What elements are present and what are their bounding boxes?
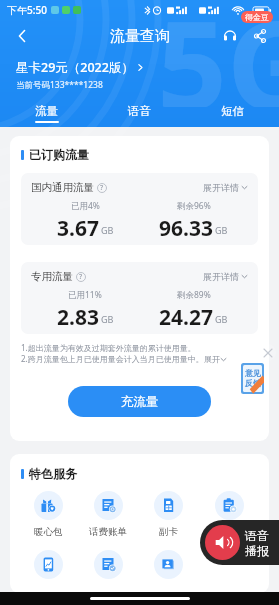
button[interactable]: Feedback [241, 363, 264, 394]
button[interactable]: Close feedback [259, 344, 276, 361]
button[interactable]: 话费账单 [78, 491, 138, 538]
button[interactable] [78, 550, 138, 579]
button[interactable]: Customer support [215, 21, 245, 51]
staticText: 剩余96% [177, 200, 211, 212]
button[interactable]: 得金豆 [245, 12, 269, 22]
staticText: 暖心包 [34, 526, 63, 538]
staticText: 副卡 [159, 526, 178, 538]
staticText: ? [79, 272, 83, 282]
staticText: 得金豆 [245, 12, 269, 22]
staticText: 充流量 [121, 394, 159, 410]
staticText: 专用流量 [31, 270, 73, 283]
staticText: 特色服务 [29, 466, 77, 481]
button[interactable]: 展开详情 [203, 182, 248, 193]
staticText: 语音 [128, 104, 151, 118]
staticText: 2.83 [57, 303, 99, 328]
staticText: 剩余89% [177, 289, 211, 301]
button[interactable]: 短信 [186, 104, 279, 127]
staticText: 下午5:50 [7, 3, 47, 17]
staticText: 流量查询 [110, 27, 170, 46]
staticText: 展开 [204, 354, 220, 364]
staticText: 反馈 [245, 378, 261, 388]
staticText: 24.27 [159, 303, 213, 328]
staticText: 流量 [35, 104, 58, 118]
button[interactable]: Voice broadcast [205, 520, 269, 565]
staticText: 语音 [245, 528, 269, 543]
staticText: 96.33 [159, 214, 213, 239]
staticText: 2.跨月流量包上月已使用量会计入当月已使用量中。 [21, 353, 204, 364]
button[interactable]: 流量 [0, 104, 93, 127]
button[interactable]: 展开详情 [203, 271, 248, 282]
staticText: GB [101, 313, 114, 325]
staticText: ? [100, 183, 104, 193]
button[interactable]: 副卡 [138, 491, 199, 538]
button[interactable]: Back [6, 20, 38, 52]
staticText: 已订购流量 [29, 147, 89, 162]
staticText: GB [101, 224, 114, 236]
staticText: 播报 [245, 543, 269, 558]
button[interactable] [138, 550, 199, 579]
button[interactable]: 星卡29元（2022版） [16, 59, 145, 76]
staticText: 1.超出流量为有效及过期套外流量的累计使用量。 [21, 342, 196, 353]
button[interactable] [18, 550, 78, 579]
button[interactable]: 展开 [204, 354, 227, 364]
staticText: 话费账单 [89, 526, 127, 538]
button[interactable]: 语音 [93, 104, 186, 127]
button[interactable]: Share [245, 21, 275, 51]
staticText: 3.67 [57, 214, 99, 239]
button[interactable]: 暖心包 [18, 491, 78, 538]
staticText: 已用4% [71, 200, 100, 212]
staticText: 星卡29元（2022版） [16, 59, 134, 76]
staticText: 5G [157, 0, 279, 107]
staticText: 展开详情 [203, 182, 239, 193]
staticText: 国内通用流量 [31, 181, 94, 194]
staticText: 展开详情 [203, 271, 239, 282]
staticText: GB [215, 224, 228, 236]
button[interactable] [199, 491, 260, 539]
button[interactable]: 充流量 [68, 386, 211, 417]
staticText: 短信 [221, 104, 244, 118]
staticText: 已用11% [68, 289, 102, 301]
staticText: 当前号码133****1238 [16, 79, 103, 91]
staticText: GB [215, 313, 228, 325]
staticText: 意见 [245, 368, 261, 378]
